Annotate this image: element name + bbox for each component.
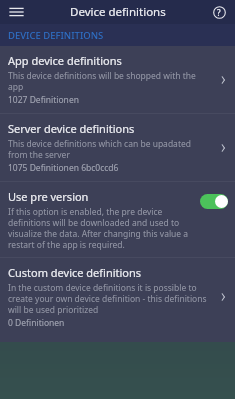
button[interactable]: App device definitions [0, 46, 235, 113]
other: Open [217, 290, 231, 304]
other: Open [217, 141, 231, 155]
staticText: This device definitions which can be upa… [8, 138, 211, 160]
staticText: Use pre version [8, 189, 89, 204]
staticText: ? [217, 7, 221, 18]
staticText: This device definitions will be shopped … [8, 70, 211, 92]
staticText: Custom device definitions [8, 265, 142, 280]
staticText: In the custom device definitions it is p… [8, 282, 211, 315]
other: Open [217, 73, 231, 87]
staticText: 1075 Definitionen 6bc0ccd6 [8, 162, 119, 174]
staticText: 0 Definitionen [8, 317, 65, 329]
button[interactable]: Use pre version [0, 182, 235, 257]
button[interactable]: Server device definitions [0, 114, 235, 181]
staticText: DEVICE DEFINITIONS [8, 29, 104, 42]
staticText: Device definitions [70, 4, 166, 20]
button[interactable]: Help [209, 2, 229, 22]
button[interactable]: Use pre version toggle, on [199, 193, 229, 210]
staticText: App device definitions [8, 53, 122, 68]
button[interactable]: Open navigation menu [6, 2, 26, 22]
staticText: 1027 Definitionen [8, 94, 79, 106]
staticText: If this option is enabled, the pre devic… [8, 206, 193, 250]
button[interactable]: Custom device definitions [0, 258, 235, 336]
staticText: Server device definitions [8, 121, 135, 136]
